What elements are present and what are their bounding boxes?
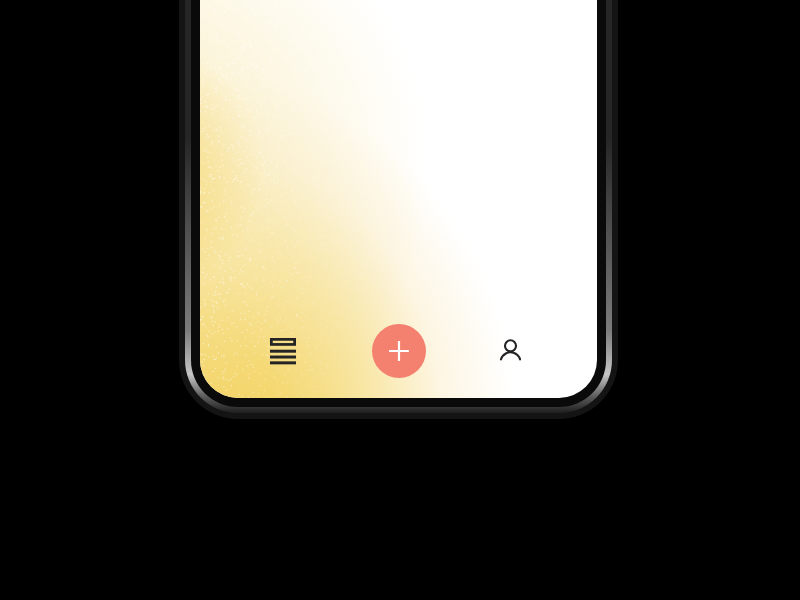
- button[interactable]: Add: [372, 324, 426, 378]
- button[interactable]: Profile: [484, 325, 536, 377]
- button[interactable]: Feed: [257, 325, 309, 377]
